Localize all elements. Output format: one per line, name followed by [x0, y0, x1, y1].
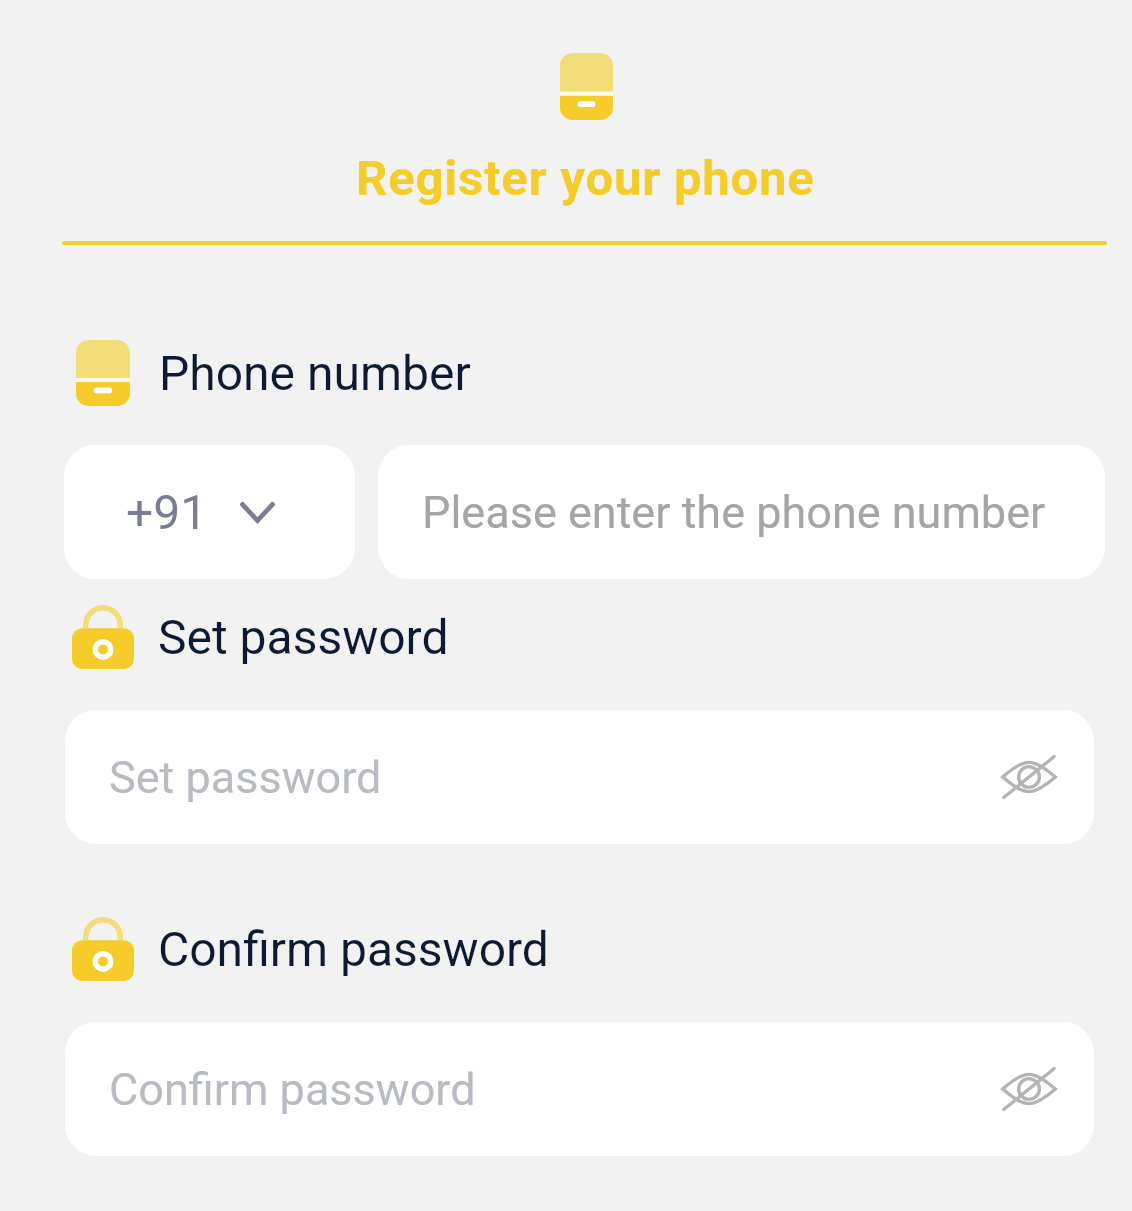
- button[interactable]: Please enter the phone number: [378, 445, 1105, 579]
- button[interactable]: +91: [64, 445, 355, 579]
- staticText: Register your phone: [356, 150, 815, 207]
- staticText: Phone number: [159, 345, 471, 401]
- button[interactable]: Show password: [998, 1058, 1060, 1120]
- button[interactable]: Show password: [998, 746, 1060, 808]
- button[interactable]: Set password: [65, 710, 1094, 844]
- staticText: Set password: [158, 609, 449, 665]
- staticText: Confirm password: [158, 921, 549, 977]
- staticText: Confirm password: [109, 1063, 476, 1116]
- staticText: +91: [126, 484, 208, 540]
- other: Choose country code: [240, 502, 275, 523]
- staticText: Set password: [109, 751, 382, 804]
- staticText: Please enter the phone number: [422, 486, 1046, 539]
- button[interactable]: Confirm password: [65, 1022, 1094, 1156]
